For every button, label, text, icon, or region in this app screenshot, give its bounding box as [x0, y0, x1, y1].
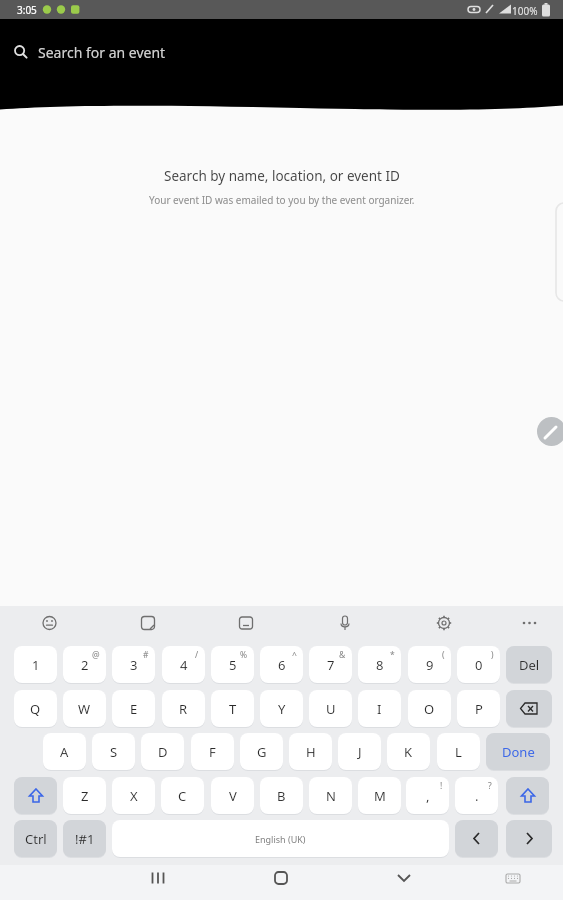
staticText: B	[277, 787, 286, 805]
button[interactable]: S	[92, 733, 135, 770]
button[interactable]: Del	[506, 646, 552, 683]
button[interactable]: Q	[14, 690, 57, 727]
staticText: 3:05	[17, 3, 37, 17]
button[interactable]: L	[437, 733, 480, 770]
button[interactable]	[537, 417, 563, 446]
staticText: D	[158, 743, 168, 761]
staticText: 6	[278, 656, 286, 674]
staticText: %	[240, 649, 248, 661]
button[interactable]: J	[338, 733, 381, 770]
staticText: Done	[502, 743, 535, 761]
staticText: Z	[81, 787, 89, 805]
button[interactable]: 9	[408, 646, 451, 683]
staticText: .	[475, 787, 479, 805]
button[interactable]: D	[141, 733, 184, 770]
staticText: Q	[30, 700, 41, 718]
staticText: 5	[229, 656, 237, 674]
button[interactable]: 1	[14, 646, 57, 683]
staticText: !	[440, 780, 443, 792]
button[interactable]: 3	[112, 646, 155, 683]
staticText: (	[442, 649, 445, 661]
staticText: S	[110, 743, 118, 761]
button[interactable]: C	[161, 777, 204, 814]
button[interactable]: F	[191, 733, 234, 770]
staticText: 1	[32, 656, 40, 674]
staticText: F	[209, 743, 216, 761]
button[interactable]	[340, 865, 460, 900]
button[interactable]: R	[162, 690, 205, 727]
button[interactable]: P	[457, 690, 500, 727]
button[interactable]: G	[240, 733, 283, 770]
button[interactable]: ,	[406, 777, 449, 814]
staticText: 4	[180, 656, 188, 674]
button[interactable]: X	[112, 777, 155, 814]
button[interactable]: M	[358, 777, 401, 814]
button[interactable]: A	[43, 733, 86, 770]
staticText: K	[404, 743, 413, 761]
button[interactable]: 5	[211, 646, 254, 683]
button[interactable]: W	[63, 690, 106, 727]
staticText: 7	[327, 656, 335, 674]
button[interactable]	[100, 865, 220, 900]
staticText: U	[326, 700, 336, 718]
button[interactable]: K	[387, 733, 430, 770]
button[interactable]: 4	[162, 646, 205, 683]
staticText: Ctrl	[25, 830, 47, 848]
button[interactable]: Search for an event	[0, 30, 563, 75]
button[interactable]: V	[211, 777, 254, 814]
button[interactable]	[506, 777, 549, 814]
staticText: I	[377, 700, 382, 718]
staticText: 9	[426, 656, 434, 674]
button[interactable]: .	[455, 777, 498, 814]
button[interactable]: 0	[457, 646, 500, 683]
button[interactable]: 6	[260, 646, 303, 683]
staticText: O	[424, 700, 435, 718]
button[interactable]: N	[309, 777, 352, 814]
staticText: E	[130, 700, 138, 718]
button[interactable]: English (UK)	[112, 820, 449, 857]
staticText: P	[475, 700, 483, 718]
staticText: G	[257, 743, 267, 761]
staticText: C	[178, 787, 187, 805]
staticText: ,	[426, 787, 430, 805]
button[interactable]: T	[211, 690, 254, 727]
button[interactable]	[220, 865, 340, 900]
staticText: M	[374, 787, 386, 805]
staticText: Search by name, location, or event ID	[164, 167, 400, 185]
staticText: W	[78, 700, 91, 718]
button[interactable]: Z	[63, 777, 106, 814]
button[interactable]: 8	[358, 646, 401, 683]
staticText: 3	[130, 656, 138, 674]
staticText: English (UK)	[255, 833, 306, 845]
button[interactable]: O	[408, 690, 451, 727]
staticText: N	[326, 787, 336, 805]
staticText: 0	[475, 656, 483, 674]
button[interactable]: 2	[63, 646, 106, 683]
button[interactable]	[506, 690, 552, 727]
staticText: ^	[292, 649, 297, 661]
button[interactable]: !#1	[63, 820, 106, 857]
staticText: *	[390, 649, 395, 661]
button[interactable]: U	[309, 690, 352, 727]
staticText: #	[143, 649, 149, 661]
button[interactable]: E	[112, 690, 155, 727]
button[interactable]: Ctrl	[14, 820, 57, 857]
staticText: V	[229, 787, 237, 805]
staticText: R	[179, 700, 188, 718]
button[interactable]: Done	[486, 733, 550, 770]
button[interactable]: Y	[260, 690, 303, 727]
staticText: Your event ID was emailed to you by the …	[149, 193, 415, 207]
staticText: Search for an event	[38, 43, 166, 62]
button[interactable]: H	[289, 733, 332, 770]
button[interactable]: 7	[309, 646, 352, 683]
staticText: 100%	[512, 4, 538, 18]
button[interactable]	[455, 820, 498, 857]
staticText: )	[491, 649, 494, 661]
button[interactable]	[506, 820, 552, 857]
button[interactable]: I	[358, 690, 401, 727]
button[interactable]: B	[260, 777, 303, 814]
staticText: X	[130, 787, 138, 805]
button[interactable]	[14, 777, 57, 814]
staticText: Del	[519, 656, 540, 674]
staticText: Y	[278, 700, 286, 718]
